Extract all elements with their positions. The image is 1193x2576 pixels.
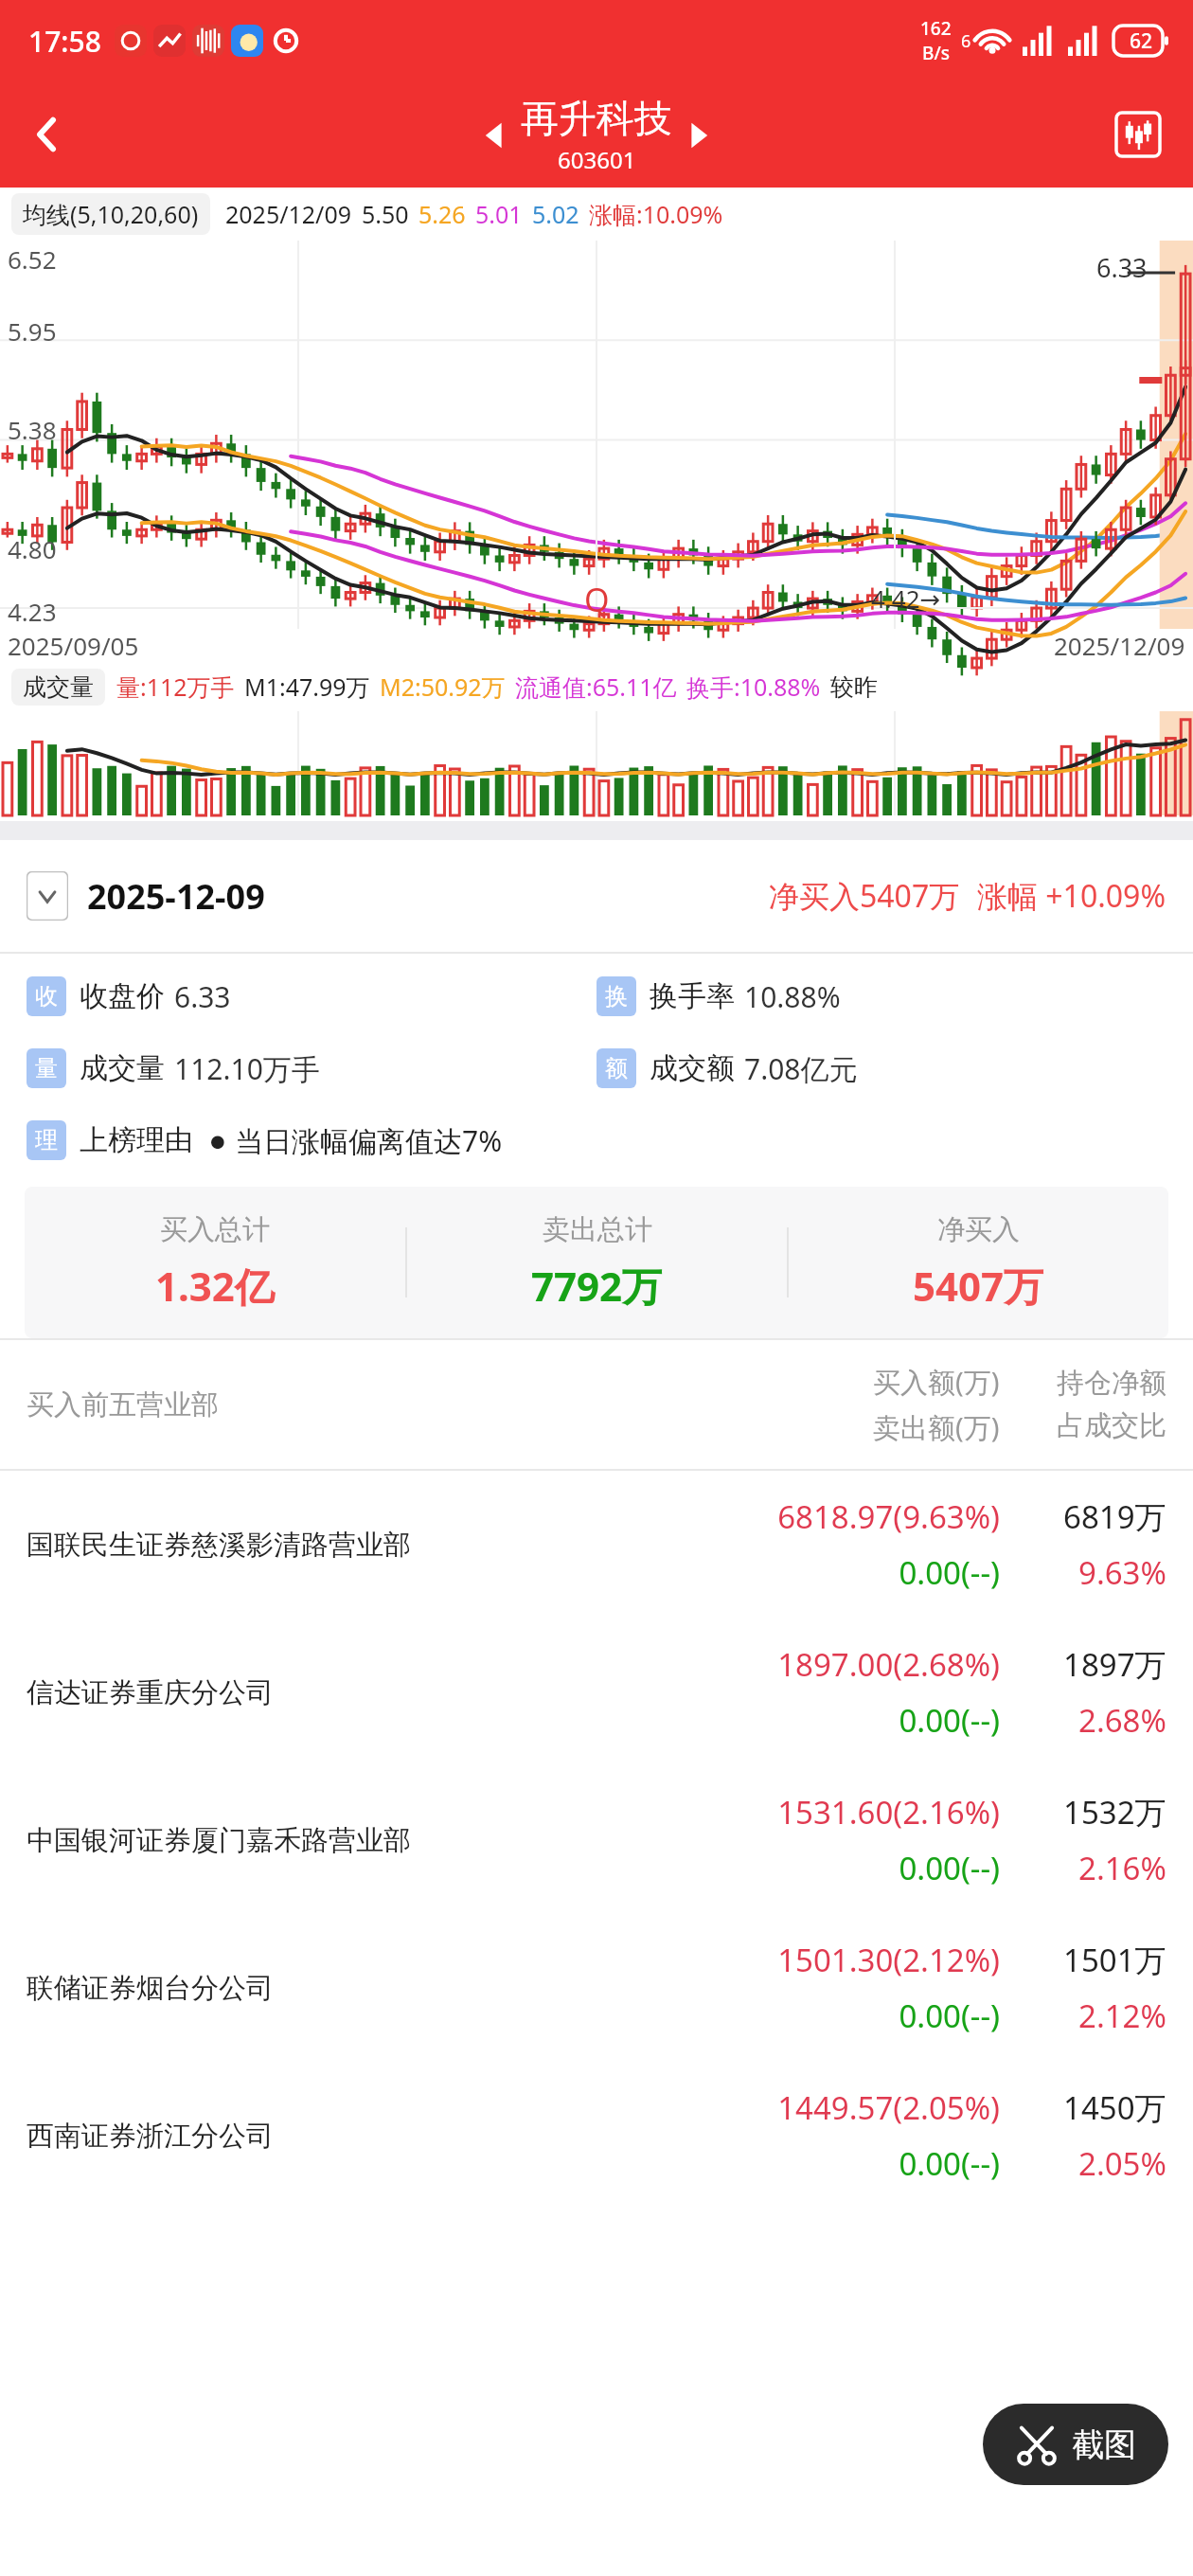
staticText: 1501万 [1063, 1939, 1166, 1981]
staticText: 6819万 [1063, 1495, 1166, 1538]
staticText: 5.50 [362, 198, 409, 230]
staticText: 10.88% [744, 977, 841, 1016]
staticText: 量:112万手 [116, 671, 235, 703]
staticText: 2.12% [1078, 1995, 1166, 2037]
staticText: 1897万 [1063, 1643, 1166, 1686]
staticText: 国联民生证券慈溪影清路营业部 [27, 1528, 763, 1563]
staticText: 603601 [558, 144, 636, 175]
staticText: 换手:10.88% [686, 671, 821, 703]
staticText: 流通值:65.11亿 [515, 671, 677, 703]
staticText: 4.80 [8, 532, 57, 565]
staticText: 2.05% [1078, 2142, 1166, 2185]
staticText: 均线(5,10,20,60) [23, 198, 199, 230]
staticText: 2025-12-09 [87, 873, 265, 920]
staticText: 买入前五营业部 [27, 1387, 782, 1422]
staticText: 中国银河证券厦门嘉禾路营业部 [27, 1823, 763, 1858]
staticText: 当日涨幅偏离值达7% [235, 1121, 503, 1160]
button[interactable]: 截图 [983, 2404, 1168, 2485]
button[interactable]: 联储证券烟台分公司 [0, 1914, 1193, 2062]
button[interactable]: 均线(5,10,20,60) [23, 198, 199, 230]
staticText: 5.01 [475, 198, 523, 230]
staticText: 6.33 [1096, 250, 1148, 285]
staticText: 持仓净额 [1057, 1366, 1166, 1401]
button[interactable]: Back [13, 100, 81, 169]
staticText: 1450万 [1063, 2086, 1166, 2129]
staticText: 112.10万手 [174, 1049, 320, 1088]
staticText: 较昨 [830, 672, 878, 702]
button[interactable]: 西南证券浙江分公司 [0, 2062, 1193, 2209]
staticText: 4.42→ [871, 581, 941, 615]
button[interactable]: 中国银河证券厦门嘉禾路营业部 [0, 1766, 1193, 1914]
staticText: 6.52 [8, 242, 57, 276]
staticText: M1:47.99万 [244, 671, 370, 703]
staticText: ● [210, 1131, 225, 1151]
staticText: 6818.97(9.63%) [777, 1495, 1000, 1538]
staticText: 成交量 [23, 672, 94, 702]
staticText: 1897.00(2.68%) [777, 1643, 1000, 1686]
staticText: 理 [35, 1126, 58, 1154]
staticText: 5.95 [8, 314, 57, 348]
staticText: 1531.60(2.16%) [777, 1791, 1000, 1834]
staticText: 占成交比 [1057, 1408, 1166, 1443]
staticText: 换 [605, 982, 628, 1011]
staticText: 0.00(--) [899, 1995, 1000, 2037]
staticText: 162 [920, 16, 952, 41]
staticText: 卖出额(万) [873, 1408, 1000, 1446]
staticText: 0.00(--) [899, 1699, 1000, 1742]
staticText: 信达证券重庆分公司 [27, 1675, 763, 1710]
staticText: 2025/12/09 [225, 198, 352, 230]
staticText: 联储证券烟台分公司 [27, 1971, 763, 2006]
staticText: 2025/09/05 [8, 629, 139, 662]
staticText: 换手率 [650, 978, 735, 1014]
staticText: 买入额(万) [873, 1363, 1000, 1401]
staticText: M2:50.92万 [380, 671, 506, 703]
staticText: 0.00(--) [899, 1551, 1000, 1594]
staticText: 5.38 [8, 413, 57, 446]
button[interactable]: Previous stock [470, 110, 521, 161]
staticText: 卖出总计 [543, 1212, 652, 1247]
button[interactable]: K-line chart [1108, 104, 1168, 165]
staticText: 0.00(--) [899, 2142, 1000, 2185]
staticText: 6 [961, 29, 971, 53]
staticText: 截图 [1072, 2424, 1136, 2465]
staticText: 成交额 [650, 1050, 735, 1086]
button[interactable]: 成交量 [23, 672, 94, 702]
staticText: 7792万 [531, 1259, 663, 1313]
staticText: 成交量 [80, 1050, 165, 1086]
staticText: 涨幅:10.09% [589, 198, 723, 230]
button[interactable]: 信达证券重庆分公司 [0, 1619, 1193, 1766]
staticText: 西南证券浙江分公司 [27, 2119, 763, 2154]
staticText: 收盘价 [80, 978, 165, 1014]
staticText: 上榜理由 [80, 1122, 193, 1158]
button[interactable]: 国联民生证券慈溪影清路营业部 [0, 1471, 1193, 1619]
staticText: 62 [1130, 27, 1153, 55]
staticText: 5407万 [913, 1259, 1044, 1313]
staticText: 2.16% [1078, 1847, 1166, 1889]
staticText: 收 [35, 982, 58, 1011]
staticText: 2.68% [1078, 1699, 1166, 1742]
staticText: 量 [35, 1054, 58, 1082]
staticText: 1.32亿 [155, 1259, 275, 1313]
staticText: 6.33 [174, 977, 231, 1016]
staticText: 5.02 [532, 198, 579, 230]
staticText: 9.63% [1078, 1551, 1166, 1594]
staticText: 额 [605, 1054, 628, 1082]
staticText: Q [584, 578, 610, 621]
button[interactable]: Next stock [672, 110, 723, 161]
staticText: B/s [922, 41, 950, 65]
staticText: 4.23 [8, 595, 57, 628]
staticText: 17:58 [28, 22, 101, 61]
staticText: 净买入 [937, 1212, 1020, 1247]
staticText: 买入总计 [160, 1212, 270, 1247]
staticText: 0.00(--) [899, 1847, 1000, 1889]
staticText: 1501.30(2.12%) [777, 1939, 1000, 1981]
staticText: 5.26 [418, 198, 466, 230]
staticText: 再升科技 [521, 95, 672, 142]
button[interactable]: 2025-12-09 [0, 840, 1193, 952]
staticText: 1449.57(2.05%) [777, 2086, 1000, 2129]
staticText: 涨幅 +10.09% [977, 875, 1166, 917]
staticText: 1532万 [1063, 1791, 1166, 1834]
staticText: 净买入5407万 [769, 875, 960, 917]
staticText: 7.08亿元 [744, 1049, 858, 1088]
staticText: 2025/12/09 [1054, 629, 1185, 662]
